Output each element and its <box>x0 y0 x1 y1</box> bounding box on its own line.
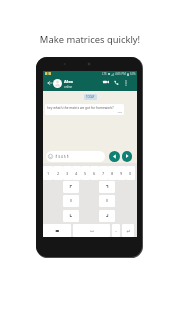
button[interactable]: 3 4 5 <box>46 151 105 162</box>
staticText: 6 <box>93 171 96 176</box>
button[interactable]: Back <box>47 80 53 86</box>
staticText: hey what's the matrix we got for homewor… <box>47 106 114 110</box>
button[interactable]: lower right bracket <box>99 210 115 222</box>
button[interactable]: Video call <box>103 80 109 84</box>
button[interactable]: hey what's the matrix we got for homewor… <box>45 104 124 115</box>
staticText: 4:05 PM <box>115 72 126 76</box>
staticText: 2 <box>57 171 60 176</box>
button[interactable]: 3 <box>63 166 72 180</box>
button[interactable]: enter <box>122 224 134 237</box>
button[interactable]: lower left bracket <box>63 210 79 222</box>
staticText: Make matrices quickly! <box>0 33 180 46</box>
button[interactable]: Previous <box>109 151 120 162</box>
button[interactable]: Contact photo <box>53 79 62 88</box>
staticText: 7 <box>102 171 105 176</box>
staticText: 8 <box>111 171 114 176</box>
button[interactable]: 4 <box>72 166 81 180</box>
staticText: 3 <box>66 171 69 176</box>
button[interactable]: dot <box>112 224 120 237</box>
button[interactable]: 1 <box>43 166 53 180</box>
button[interactable]: backspace <box>43 224 71 237</box>
button[interactable]: More options <box>125 80 127 86</box>
button[interactable]: upper right bracket <box>99 181 115 193</box>
staticText: 3 4 5 <box>58 154 66 159</box>
staticText: 1 <box>47 171 50 176</box>
staticText: 0 <box>129 171 132 176</box>
button[interactable]: 2 <box>53 166 63 180</box>
staticText: LTE <box>102 72 107 76</box>
staticText: 5 <box>84 171 87 176</box>
staticText: TODAY <box>86 95 95 99</box>
button[interactable]: Next <box>122 151 132 162</box>
button[interactable]: space <box>73 224 110 237</box>
staticText: 4 <box>75 171 78 176</box>
staticText: online <box>64 85 73 89</box>
button[interactable]: 6 <box>90 166 99 180</box>
staticText: 4:05 <box>47 111 122 114</box>
staticText: 63% <box>130 72 136 76</box>
button[interactable]: 0 <box>126 166 135 180</box>
button[interactable]: 7 <box>99 166 108 180</box>
staticText: 9 <box>120 171 123 176</box>
button[interactable]: Call <box>114 80 119 85</box>
staticText: Alex <box>64 79 73 85</box>
button[interactable]: 9 <box>117 166 126 180</box>
button[interactable]: vertical bar <box>63 195 79 207</box>
button[interactable]: 5 <box>81 166 90 180</box>
button[interactable]: upper left bracket <box>63 181 79 193</box>
button[interactable]: 8 <box>108 166 117 180</box>
button[interactable]: vertical bar <box>99 195 115 207</box>
